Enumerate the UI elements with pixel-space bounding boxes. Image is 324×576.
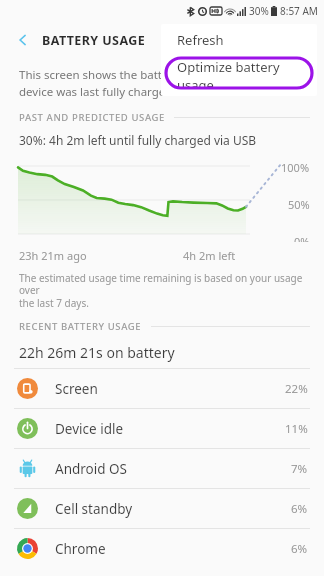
button[interactable]: Device idle	[0, 409, 324, 448]
staticText: 30%	[249, 4, 269, 18]
staticText: 6%	[291, 501, 308, 517]
button[interactable]: Cell standby	[0, 489, 324, 528]
staticText: Android OS	[55, 460, 127, 478]
staticText: 30%: 4h 2m left until fully charged via …	[19, 132, 257, 148]
staticText: RECENT BATTERY USAGE	[19, 320, 142, 333]
staticText: PAST AND PREDICTED USAGE	[19, 111, 165, 124]
staticText: Screen	[55, 380, 98, 398]
staticText: 22%	[285, 381, 308, 397]
staticText: Chrome	[55, 540, 106, 558]
staticText: 11%	[285, 421, 308, 437]
staticText: 4h 2m left	[183, 248, 236, 263]
staticText: 23h 21m ago	[19, 248, 87, 263]
staticText: 22h 26m 21s on battery	[19, 343, 175, 362]
button[interactable]: Android OS	[0, 449, 324, 488]
staticText: BATTERY USAGE	[42, 32, 146, 49]
staticText: Device idle	[55, 420, 124, 438]
button[interactable]: Back	[10, 27, 36, 53]
staticText: Cell standby	[55, 500, 133, 518]
staticText: The estimated usage time remaining is ba…	[19, 271, 308, 310]
staticText: This screen shows the battery usage sinc…	[19, 67, 267, 99]
button[interactable]: Optimize battery usage	[166, 58, 312, 88]
staticText: 6%	[291, 541, 308, 557]
button[interactable]: Chrome	[0, 529, 324, 568]
staticText: 100%	[281, 160, 310, 175]
staticText: 0%	[294, 234, 310, 242]
staticText: 50%	[288, 197, 310, 212]
button[interactable]: Screen	[0, 369, 324, 408]
staticText: Optimize battery usage	[177, 58, 312, 88]
staticText: 7%	[291, 461, 308, 477]
staticText: 8:57 AM	[280, 4, 318, 18]
button[interactable]: Refresh	[161, 24, 317, 56]
staticText: Refresh	[177, 31, 224, 49]
